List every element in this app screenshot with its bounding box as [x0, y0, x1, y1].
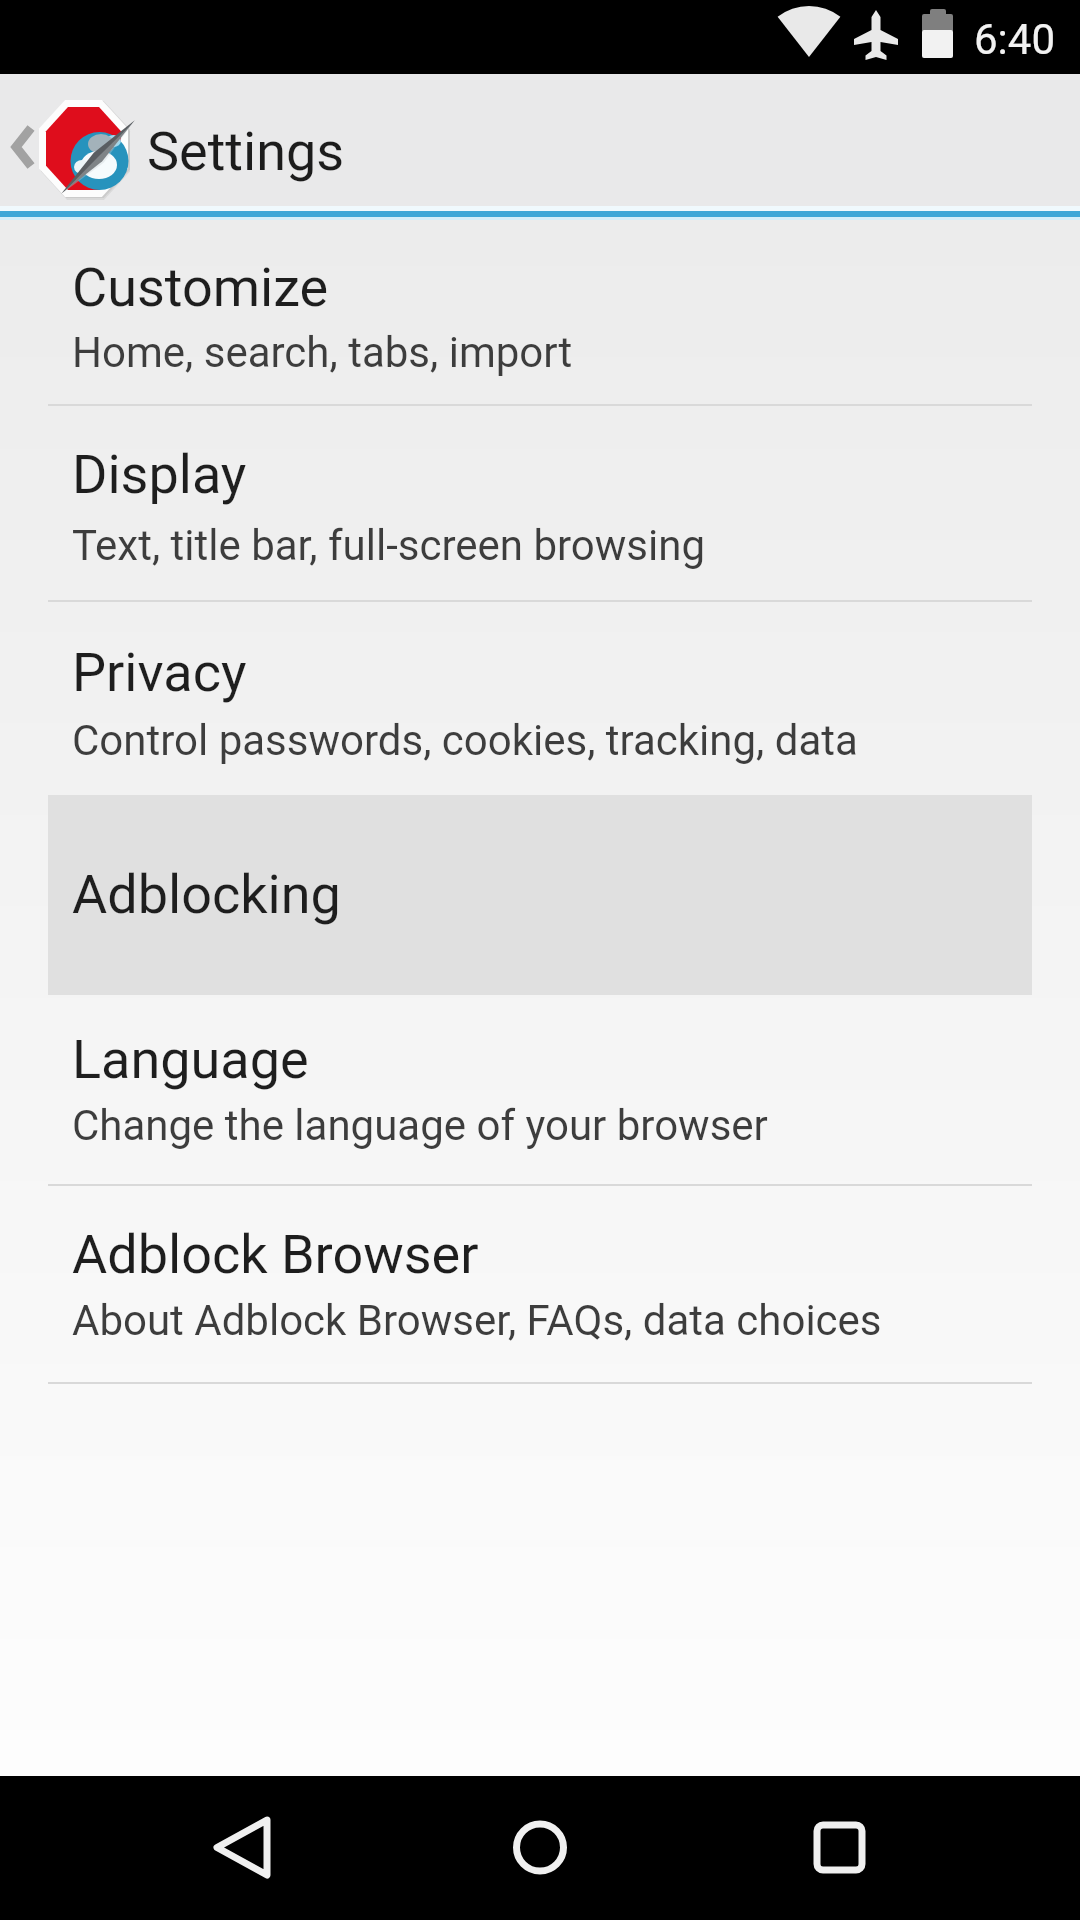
staticText: Text, title bar, full-screen browsing [72, 521, 706, 570]
button[interactable]: Privacy [0, 602, 1080, 795]
staticText: Home, search, tabs, import [72, 328, 573, 377]
staticText: Language [72, 1028, 309, 1091]
button[interactable] [792, 1800, 888, 1896]
button[interactable]: Adblocking [48, 795, 1032, 995]
button[interactable] [192, 1800, 288, 1896]
staticText: Customize [72, 256, 329, 319]
staticText: 6:40 [974, 15, 1055, 64]
button[interactable] [0, 74, 150, 212]
staticText: About Adblock Browser, FAQs, data choice… [72, 1296, 882, 1345]
staticText: Privacy [72, 641, 247, 704]
staticText: Change the language of your browser [72, 1101, 768, 1150]
button[interactable]: Language [0, 995, 1080, 1184]
staticText: Adblocking [72, 863, 341, 926]
staticText: Adblock Browser [72, 1223, 479, 1286]
staticText: Settings [147, 120, 345, 183]
button[interactable] [492, 1800, 588, 1896]
staticText: Display [72, 443, 247, 506]
staticText: Control passwords, cookies, tracking, da… [72, 716, 858, 765]
button[interactable]: Display [0, 406, 1080, 600]
button[interactable]: Adblock Browser [0, 1186, 1080, 1382]
button[interactable]: Customize [0, 220, 1080, 404]
